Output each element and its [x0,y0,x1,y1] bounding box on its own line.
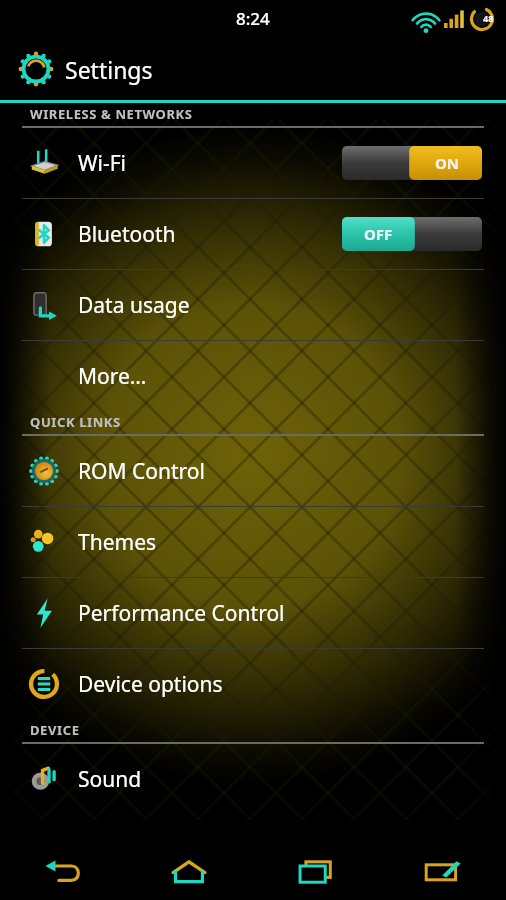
button[interactable]: ROM Control [0,436,506,506]
staticText: Wi-Fi [78,149,127,178]
staticText: OFF [364,224,393,244]
staticText: Performance Control [78,599,285,628]
staticText: ON [435,153,460,173]
staticText: Themes [78,528,157,557]
button[interactable]: Themes [0,507,506,577]
button[interactable]: Back [0,844,126,900]
staticText: QUICK LINKS [30,413,121,431]
staticText: ROM Control [78,457,205,486]
staticText: Device options [78,670,223,699]
button[interactable]: ON [342,146,482,180]
staticText: WIRELESS & NETWORKS [30,105,193,123]
button[interactable]: Device options [0,649,506,719]
button[interactable]: Settings [0,38,506,100]
staticText: Bluetooth [78,220,176,249]
button[interactable]: Performance Control [0,578,506,648]
button[interactable]: More… [0,341,506,411]
staticText: More… [78,362,147,391]
staticText: Data usage [78,291,190,320]
button[interactable]: Sound [0,744,506,814]
staticText: DEVICE [30,721,80,739]
staticText: Settings [65,54,153,85]
button[interactable]: Data usage [0,270,506,340]
staticText: 8:24 [236,7,270,30]
staticText: 48 [483,12,494,24]
button[interactable]: Home [126,844,252,900]
staticText: Sound [78,765,142,794]
button[interactable]: Bluetooth [0,199,506,269]
button[interactable]: OFF [342,217,482,251]
button[interactable]: Screenshot [379,844,506,900]
button[interactable]: Wi-Fi [0,128,506,198]
button[interactable]: Recents [252,844,379,900]
